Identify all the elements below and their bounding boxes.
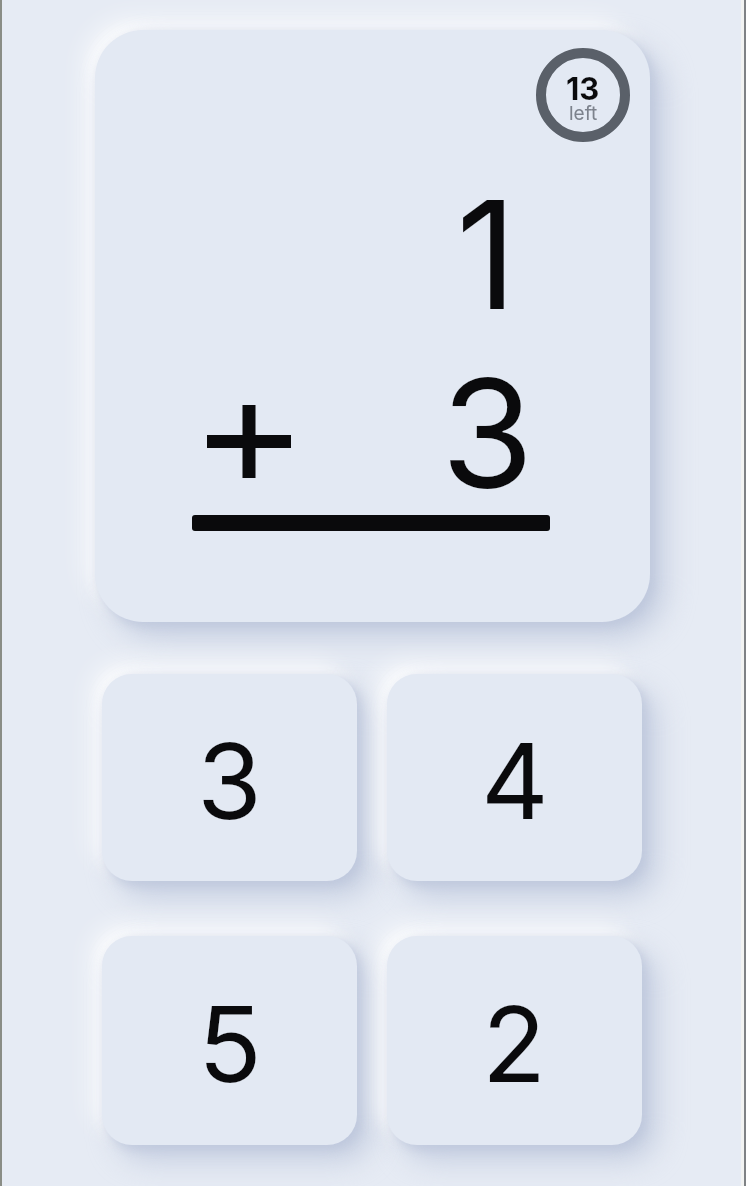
staticText: 1 [456,164,518,344]
button[interactable]: 2 [387,936,642,1145]
staticText: left [569,102,598,125]
staticText: 4 [481,717,549,844]
staticText: 3 [197,717,262,844]
button[interactable]: 4 [387,674,642,881]
staticText: 13 [566,70,600,108]
button[interactable]: 3 [102,674,357,881]
staticText: 3 [441,343,534,523]
button[interactable]: 13 [95,30,650,622]
staticText: 5 [198,980,262,1107]
button[interactable]: 5 [102,936,357,1145]
staticText: 2 [482,980,547,1107]
